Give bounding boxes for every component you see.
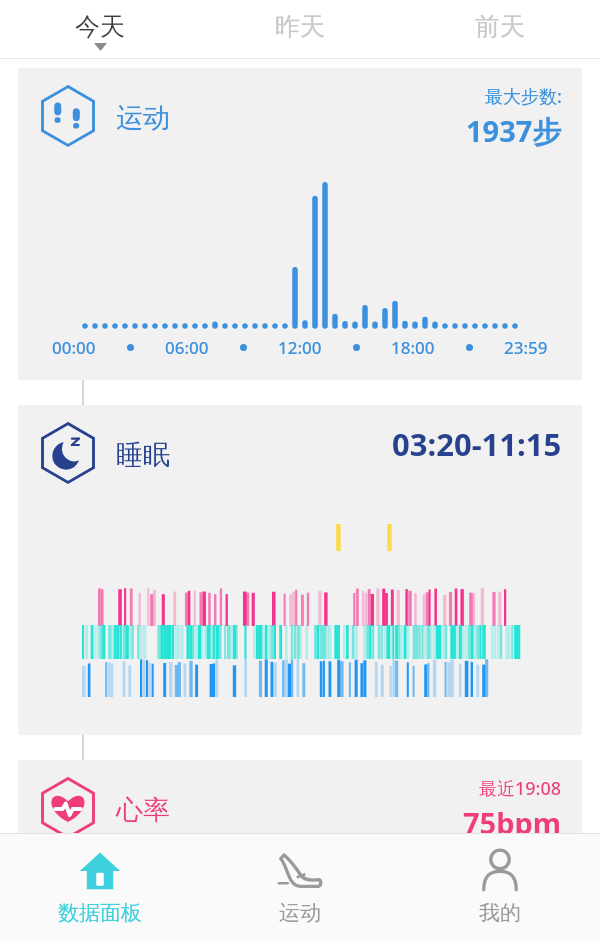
staticText: 前天 <box>475 11 525 42</box>
staticText: 我的 <box>479 900 521 926</box>
staticText: 03:20-11:15 <box>392 423 562 465</box>
staticText: 心率 <box>116 793 170 827</box>
staticText: 1937步 <box>466 111 562 151</box>
staticText: 00:00 <box>52 336 96 359</box>
button[interactable]: 昨天 <box>200 0 400 58</box>
staticText: 最大步数: <box>485 84 562 109</box>
staticText: 数据面板 <box>58 900 142 926</box>
staticText: 06:00 <box>165 336 209 359</box>
staticText: 18:00 <box>391 336 435 359</box>
staticText: 75bpm <box>463 803 562 842</box>
staticText: 最近19:08 <box>479 776 562 801</box>
button[interactable]: 运动 <box>18 68 582 380</box>
button[interactable]: 运动 <box>200 834 400 940</box>
staticText: 运动 <box>116 101 170 135</box>
staticText: 昨天 <box>275 11 325 42</box>
staticText: 今天 <box>75 11 125 42</box>
button[interactable]: 数据面板 <box>0 834 200 940</box>
staticText: 睡眠 <box>116 438 170 472</box>
staticText: 23:59 <box>504 336 548 359</box>
staticText: 运动 <box>279 900 321 926</box>
button[interactable]: 今天 <box>0 0 200 58</box>
button[interactable]: 前天 <box>400 0 600 58</box>
button[interactable]: 睡眠 <box>18 405 582 735</box>
staticText: 12:00 <box>278 336 322 359</box>
button[interactable]: 心率 <box>18 760 582 940</box>
button[interactable]: 我的 <box>400 834 600 940</box>
